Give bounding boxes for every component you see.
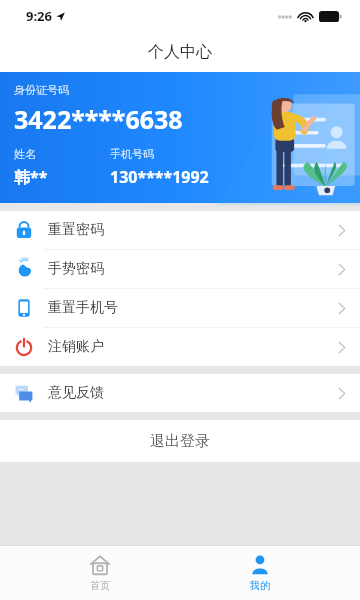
staticText: 手势密码 — [48, 260, 104, 278]
staticText: 手机号码 — [110, 147, 154, 161]
staticText: 9:26 — [26, 7, 52, 25]
staticText: 身份证号码 — [14, 83, 69, 97]
button[interactable]: 退出登录 — [0, 420, 360, 462]
button[interactable]: 意见反馈 — [0, 374, 360, 412]
button[interactable]: 首页 — [40, 554, 160, 592]
button[interactable]: 重置手机号 — [0, 289, 360, 327]
staticText: 意见反馈 — [48, 384, 104, 402]
button[interactable]: 重置密码 — [0, 211, 360, 249]
button[interactable]: 手势密码 — [0, 250, 360, 288]
staticText: 首页 — [90, 579, 110, 592]
staticText: 重置手机号 — [48, 299, 118, 317]
staticText: 韩** — [14, 166, 48, 188]
staticText: 退出登录 — [150, 432, 210, 451]
staticText: 我的 — [250, 579, 270, 592]
staticText: 重置密码 — [48, 221, 104, 239]
button[interactable]: 我的 — [200, 554, 320, 592]
staticText: 130****1992 — [110, 166, 209, 188]
staticText: 个人中心 — [148, 42, 212, 62]
staticText: 注销账户 — [48, 338, 104, 356]
button[interactable]: 注销账户 — [0, 328, 360, 366]
staticText: 3422****6638 — [14, 102, 183, 136]
staticText: 姓名 — [14, 147, 36, 161]
